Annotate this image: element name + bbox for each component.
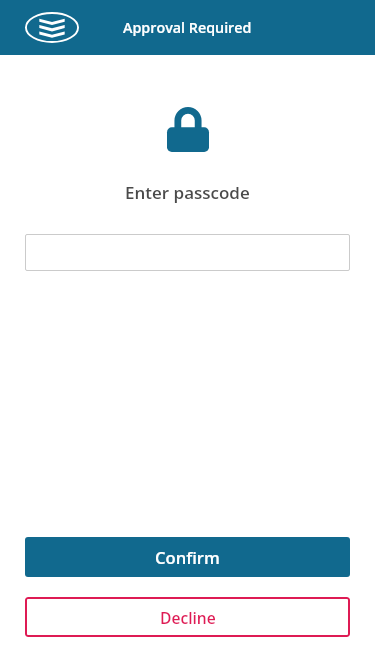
staticText: Decline (160, 607, 216, 628)
staticText: Approval Required (123, 18, 252, 37)
button[interactable]: Confirm (25, 537, 350, 577)
other: Locked (167, 106, 209, 152)
staticText: Enter passcode (125, 181, 250, 204)
other: Bank logo (25, 12, 79, 43)
staticText: Confirm (155, 546, 220, 569)
button[interactable]: Decline (25, 597, 350, 637)
button[interactable]: Passcode field (25, 234, 350, 271)
